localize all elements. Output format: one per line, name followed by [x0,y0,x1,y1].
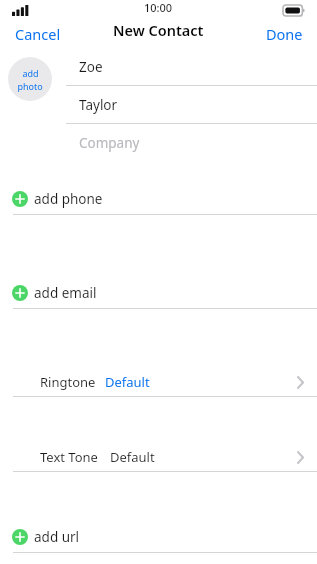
button[interactable]: Ringtone [0,368,317,396]
staticText: Done [266,24,303,44]
staticText: add [22,67,39,79]
staticText: add url [34,528,80,546]
staticText: add phone [34,190,103,208]
staticText: New Contact [113,20,204,40]
button[interactable]: Company [66,124,317,161]
staticText: Cancel [15,24,61,44]
button[interactable]: add url [0,522,317,552]
button[interactable]: Zoe [66,48,317,85]
button[interactable]: Done [256,20,317,48]
staticText: Default [105,373,150,391]
staticText: Taylor [79,96,118,114]
button[interactable]: Taylor [66,86,317,123]
staticText: add email [34,284,97,302]
staticText: 10:00 [144,0,173,15]
staticText: Ringtone [40,373,96,391]
staticText: Company [79,134,140,152]
button[interactable]: Cancel [0,20,71,48]
staticText: photo [17,80,43,92]
button[interactable]: Text Tone [0,443,317,471]
staticText: Zoe [79,58,103,76]
button[interactable]: add phone [0,184,317,214]
staticText: Text Tone [40,448,98,466]
button[interactable]: add photo [8,57,52,101]
staticText: Default [110,448,155,466]
button[interactable]: add email [0,278,317,308]
